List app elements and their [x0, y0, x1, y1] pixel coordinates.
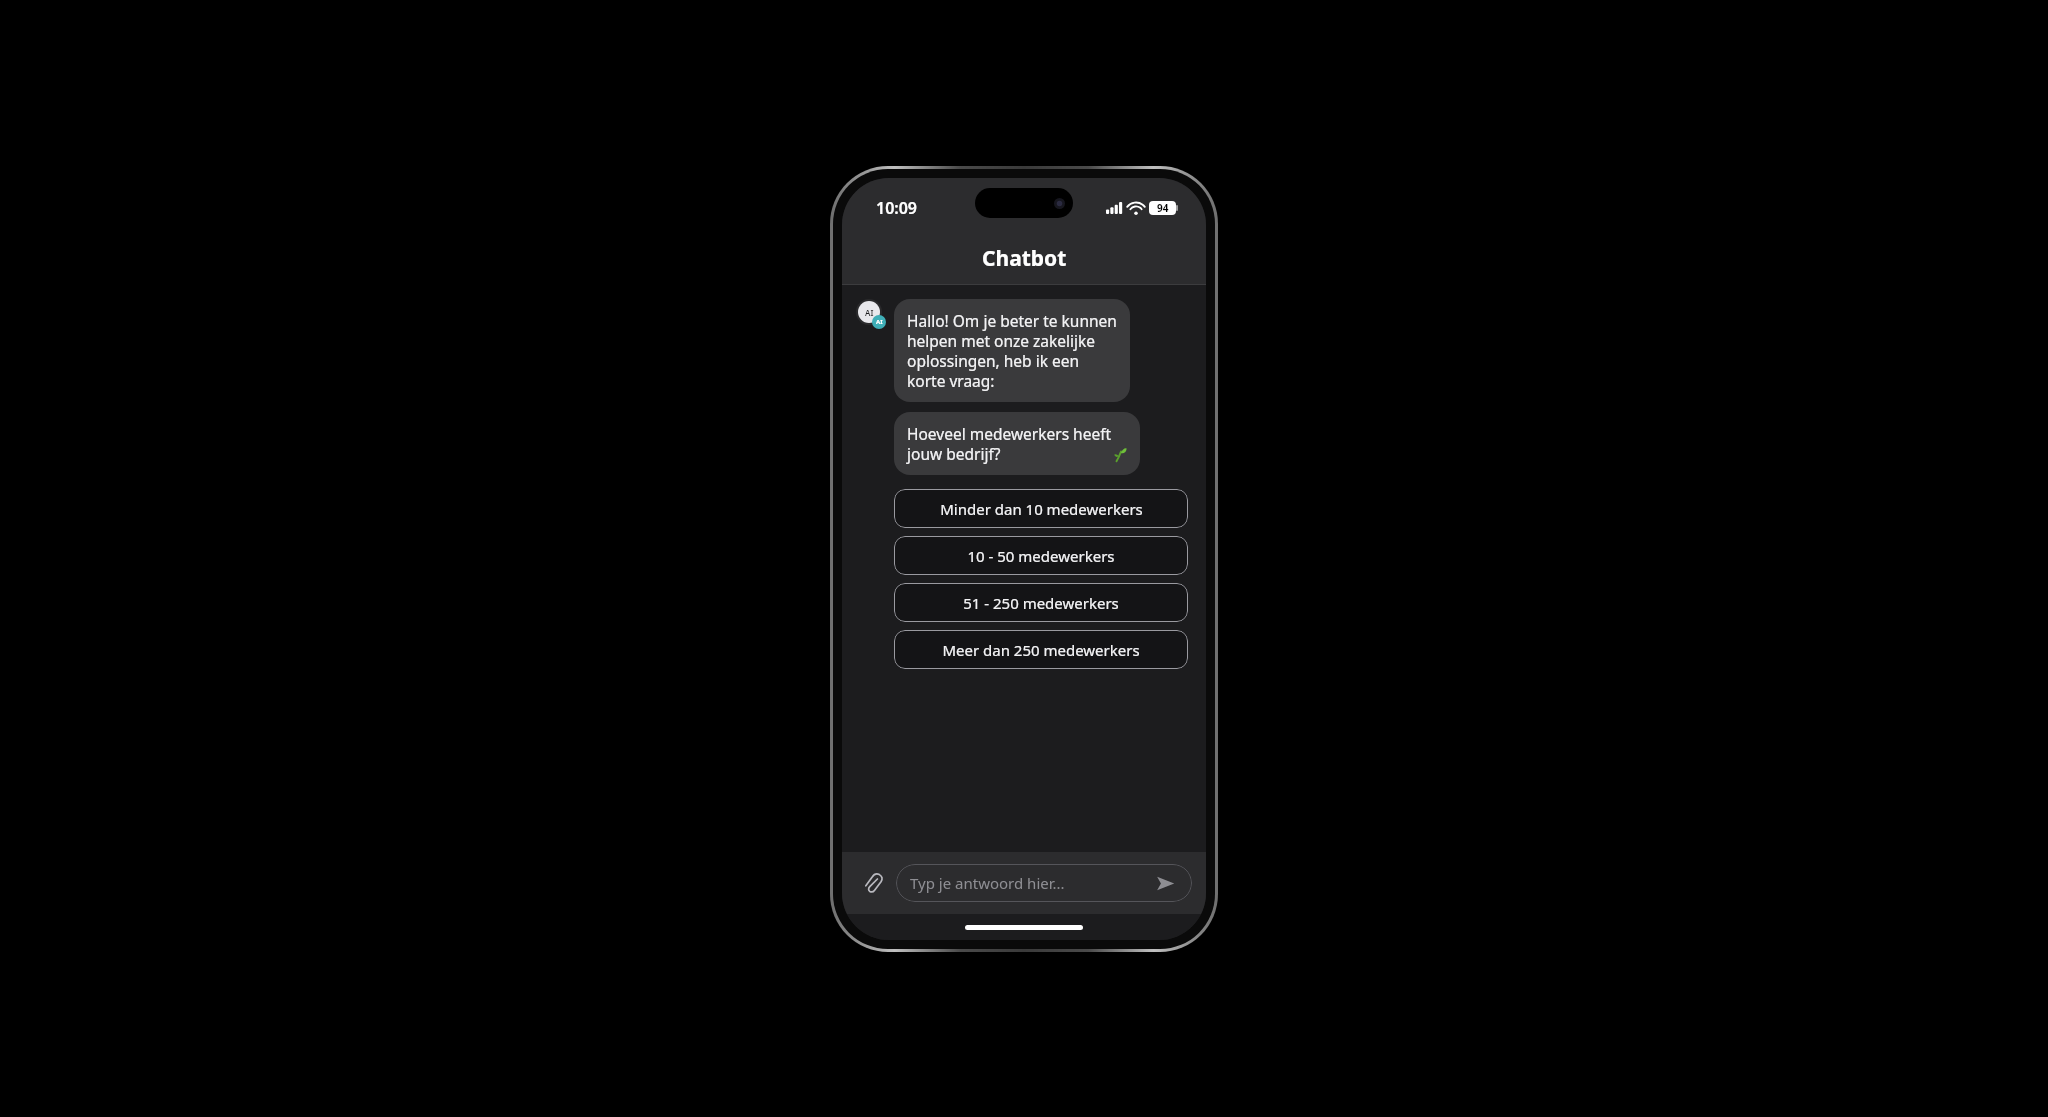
staticText: Minder dan 10 medewerkers [940, 499, 1143, 519]
button[interactable]: Meer dan 250 medewerkers [894, 630, 1188, 669]
staticText: 94 [1157, 201, 1169, 215]
staticText: Chatbot [982, 244, 1067, 273]
button[interactable]: Typ je antwoord hier... [896, 864, 1192, 902]
staticText: AI [876, 318, 883, 326]
staticText: Meer dan 250 medewerkers [942, 640, 1140, 660]
staticText: Hallo! Om je beter te kunnen helpen met … [907, 310, 1117, 391]
button[interactable]: 10 - 50 medewerkers [894, 536, 1188, 575]
staticText: 10 - 50 medewerkers [967, 546, 1115, 566]
button[interactable]: Attach file [856, 866, 890, 900]
staticText: AI [865, 307, 874, 318]
staticText: Hoeveel medewerkers heeft jouw bedrijf? [907, 423, 1112, 464]
staticText: 10:09 [876, 197, 918, 219]
staticText: Typ je antwoord hier... [910, 873, 1065, 893]
staticText: 51 - 250 medewerkers [963, 593, 1119, 613]
button[interactable]: Send [1152, 870, 1178, 896]
button[interactable]: 51 - 250 medewerkers [894, 583, 1188, 622]
button[interactable]: Minder dan 10 medewerkers [894, 489, 1188, 528]
